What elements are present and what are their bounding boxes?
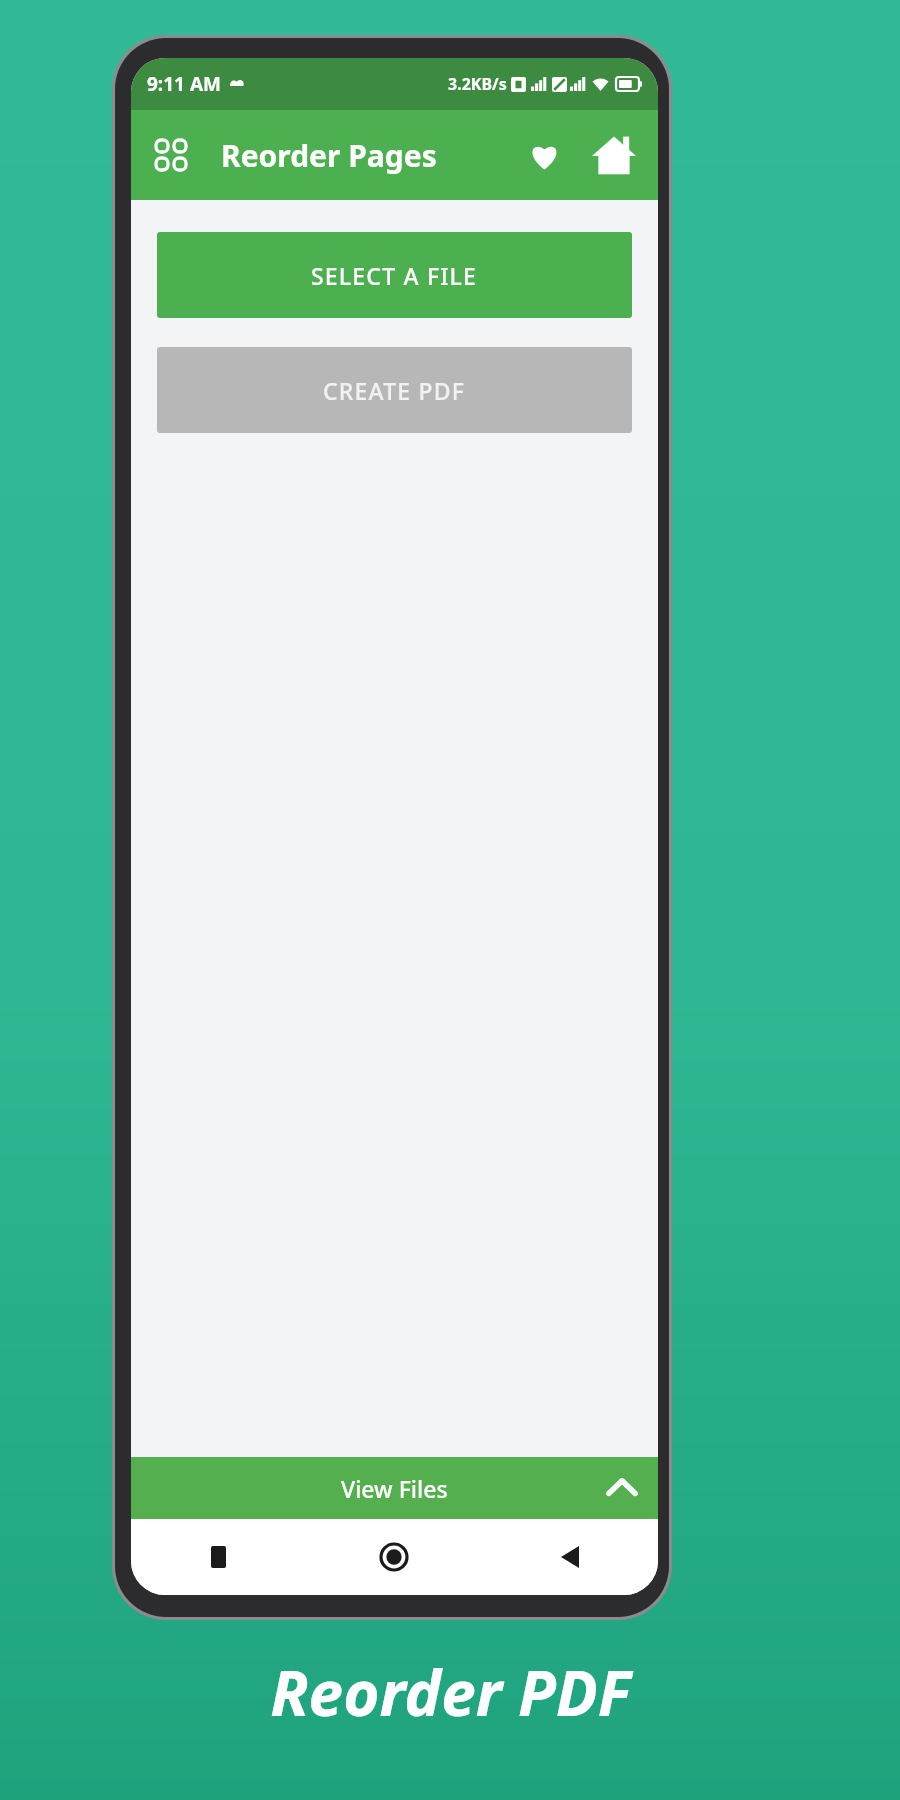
staticText: Reorder Pages xyxy=(221,135,437,176)
button[interactable]: Back xyxy=(482,1519,658,1595)
button[interactable]: Open menu xyxy=(145,129,197,181)
staticText: CREATE PDF xyxy=(323,375,466,406)
button[interactable]: Recent apps xyxy=(131,1519,306,1595)
staticText: 3.2KB/s xyxy=(448,73,507,95)
staticText: Reorder PDF xyxy=(270,1650,631,1734)
button[interactable]: View Files xyxy=(131,1457,658,1519)
button[interactable]: Home xyxy=(580,121,648,189)
button[interactable]: Home xyxy=(306,1519,482,1595)
button[interactable]: CREATE PDF xyxy=(157,347,632,433)
staticText: 9:11 AM xyxy=(147,71,221,97)
button[interactable]: Favorites xyxy=(512,123,576,187)
staticText: SELECT A FILE xyxy=(311,260,478,291)
staticText: View Files xyxy=(341,1473,448,1504)
button[interactable]: SELECT A FILE xyxy=(157,232,632,318)
